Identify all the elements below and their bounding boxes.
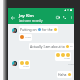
staticText: 22 — [70, 45, 73, 48]
staticText: Haha — [58, 72, 67, 77]
button[interactable]: Voice call — [61, 12, 68, 23]
button[interactable]: Putting on — [19, 26, 58, 33]
staticText: last seen recently — [19, 19, 43, 23]
staticText: Putting on — [20, 27, 37, 32]
staticText: 12:06 — [64, 57, 70, 60]
staticText: 12:07 — [68, 63, 74, 66]
button[interactable]: 12:06 — [55, 52, 71, 61]
button[interactable]: 12:07 — [19, 60, 30, 69]
staticText: 12:04 — [25, 36, 31, 39]
staticText: Jay Kim — [19, 13, 34, 19]
staticText: for the — [42, 27, 53, 32]
button[interactable]: Jay Kim — [19, 13, 54, 23]
button[interactable]: Video call — [54, 12, 61, 23]
button[interactable]: 12:04 — [19, 34, 32, 41]
button[interactable]: Actually I am about to — [29, 43, 74, 50]
button[interactable]: Haha — [57, 71, 72, 78]
staticText: 12:07 — [23, 65, 29, 68]
button[interactable]: More options — [68, 12, 74, 23]
staticText: Actually I am about to — [30, 44, 65, 49]
button[interactable]: Back — [8, 12, 17, 23]
